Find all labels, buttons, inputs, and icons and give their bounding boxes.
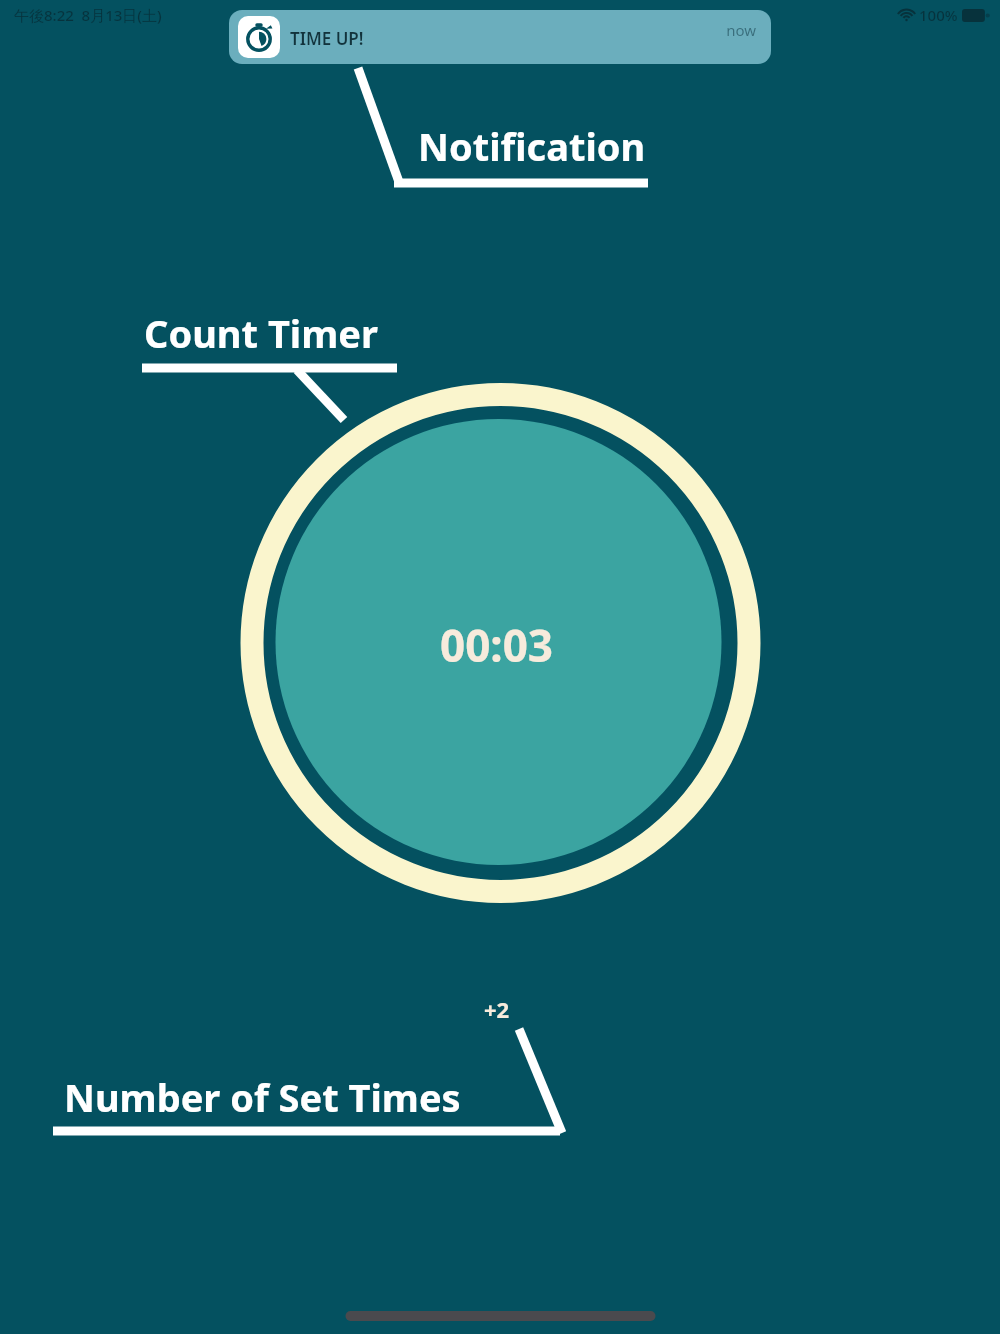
staticText: 100% — [919, 5, 958, 25]
staticText: Number of Set Times — [64, 1071, 461, 1123]
staticText: Count Timer — [144, 307, 378, 359]
staticText: TIME UP! — [290, 27, 364, 50]
staticText: 午後8:22 8月13日(土) — [14, 5, 162, 25]
staticText: +2 — [484, 994, 510, 1024]
staticText: 00:03 — [440, 615, 554, 675]
staticText: now — [726, 20, 756, 40]
staticText: Notification — [418, 120, 646, 172]
button[interactable]: TIME UP! notification — [229, 10, 771, 64]
